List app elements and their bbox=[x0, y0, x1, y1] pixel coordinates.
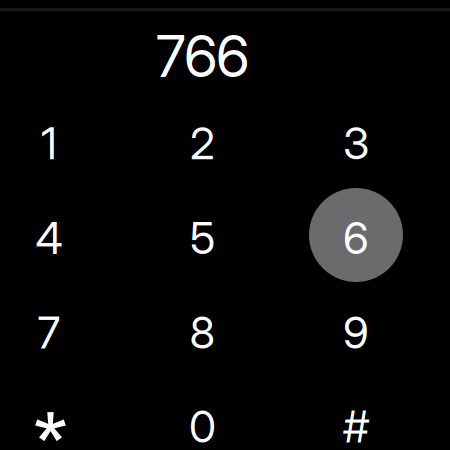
staticText: 1 bbox=[41, 117, 57, 170]
button[interactable]: 1 bbox=[0, 96, 115, 190]
button[interactable]: # bbox=[290, 379, 422, 450]
staticText: 5 bbox=[190, 211, 215, 265]
button[interactable]: 7 bbox=[0, 285, 115, 379]
staticText: 3 bbox=[343, 117, 369, 170]
staticText: 0 bbox=[189, 400, 216, 450]
button[interactable] bbox=[0, 379, 115, 450]
button[interactable]: 4 bbox=[0, 191, 115, 285]
staticText: 9 bbox=[343, 306, 369, 359]
staticText: 2 bbox=[190, 117, 215, 170]
button[interactable]: 6 bbox=[290, 191, 422, 285]
button[interactable]: 2 bbox=[136, 96, 268, 190]
staticText: 6 bbox=[343, 211, 369, 265]
staticText: 7 bbox=[37, 306, 60, 359]
staticText: 4 bbox=[35, 211, 62, 265]
button[interactable]: 9 bbox=[290, 285, 422, 379]
staticText: 766 bbox=[156, 21, 249, 91]
button[interactable]: 3 bbox=[290, 96, 422, 190]
staticText: # bbox=[343, 400, 369, 450]
button[interactable]: 5 bbox=[136, 191, 268, 285]
staticText: 8 bbox=[189, 306, 215, 359]
button[interactable]: 0 bbox=[136, 379, 268, 450]
button[interactable]: 8 bbox=[136, 285, 268, 379]
